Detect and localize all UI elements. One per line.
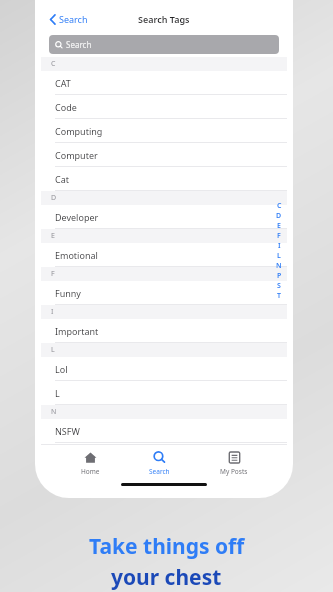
- button[interactable]: Alphabet index: [276, 201, 282, 301]
- button[interactable]: CAT: [41, 71, 287, 95]
- staticText: T: [277, 291, 281, 301]
- staticText: Search: [66, 39, 92, 50]
- staticText: Search: [149, 467, 170, 476]
- button[interactable]: Lol: [41, 357, 287, 381]
- staticText: CAT: [55, 77, 71, 89]
- button[interactable]: Search: [47, 10, 90, 28]
- button[interactable]: Computing: [41, 119, 287, 143]
- button[interactable]: Code: [41, 95, 287, 119]
- staticText: L: [277, 251, 281, 261]
- button[interactable]: Emotional: [41, 243, 287, 267]
- staticText: D: [51, 193, 57, 203]
- staticText: Search Tags: [138, 13, 190, 25]
- staticText: I: [51, 307, 54, 317]
- button[interactable]: Developer: [41, 205, 287, 229]
- button[interactable]: Cat: [41, 167, 287, 191]
- staticText: E: [51, 231, 55, 241]
- staticText: Lol: [55, 363, 68, 375]
- staticText: C: [51, 59, 56, 69]
- staticText: F: [277, 231, 281, 241]
- button[interactable]: NSFW: [41, 419, 287, 443]
- staticText: Important: [55, 325, 99, 337]
- staticText: Code: [55, 101, 77, 113]
- button[interactable]: Search: [139, 449, 180, 478]
- staticText: P: [277, 271, 282, 281]
- staticText: N: [276, 261, 282, 271]
- staticText: Take things off: [89, 532, 245, 561]
- button[interactable]: Important: [41, 319, 287, 343]
- button[interactable]: Search: [49, 35, 279, 54]
- button[interactable]: My Posts: [210, 449, 258, 478]
- button[interactable]: Funny: [41, 281, 287, 305]
- staticText: Funny: [55, 287, 81, 299]
- staticText: I: [278, 241, 281, 251]
- staticText: S: [277, 281, 281, 291]
- staticText: Computing: [55, 125, 103, 137]
- staticText: My Posts: [220, 467, 248, 476]
- staticText: L: [55, 387, 60, 399]
- staticText: D: [276, 211, 282, 221]
- button[interactable]: Home: [71, 449, 110, 478]
- staticText: Developer: [55, 211, 99, 223]
- staticText: NSFW: [55, 425, 80, 437]
- staticText: Home: [81, 467, 100, 476]
- staticText: Search: [59, 13, 88, 25]
- staticText: F: [51, 269, 55, 279]
- staticText: Cat: [55, 173, 69, 185]
- staticText: N: [51, 407, 57, 417]
- staticText: Emotional: [55, 249, 98, 261]
- staticText: your chest: [111, 563, 222, 592]
- button[interactable]: L: [41, 381, 287, 405]
- button[interactable]: Computer: [41, 143, 287, 167]
- staticText: E: [277, 221, 281, 231]
- staticText: L: [51, 345, 55, 355]
- staticText: C: [277, 201, 282, 211]
- staticText: Computer: [55, 149, 98, 161]
